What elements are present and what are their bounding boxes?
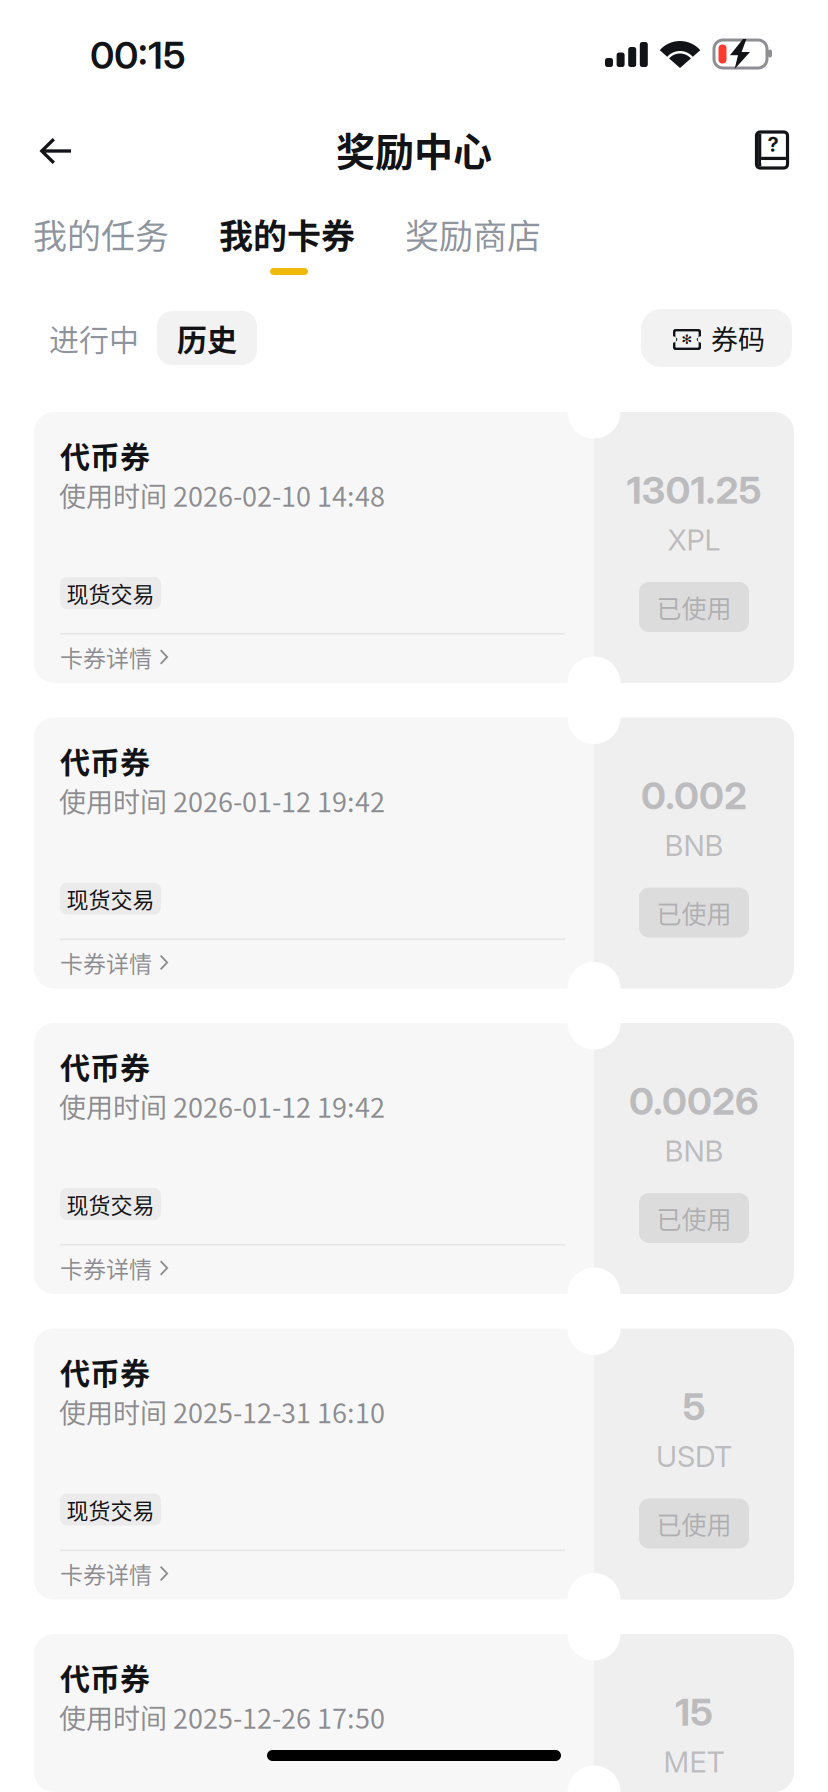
- button[interactable]: 进行中: [48, 311, 140, 365]
- staticText: 奖励商店: [405, 209, 541, 259]
- staticText: 5: [682, 1383, 705, 1429]
- staticText: 0.002: [641, 772, 747, 818]
- button[interactable]: 我的卡券: [219, 206, 359, 262]
- staticText: 已使用: [656, 589, 731, 625]
- staticText: 卡券详情: [60, 640, 152, 674]
- staticText: 已使用: [656, 894, 731, 931]
- staticText: 卡券详情: [60, 946, 152, 979]
- staticText: 现货交易: [66, 1188, 154, 1220]
- staticText: 15: [675, 1689, 713, 1735]
- staticText: 我的卡券: [219, 209, 355, 259]
- staticText: ?: [767, 132, 778, 157]
- staticText: BNB: [664, 828, 723, 863]
- staticText: 00:15: [90, 32, 186, 78]
- button[interactable]: 返回: [25, 121, 85, 181]
- staticText: 现货交易: [66, 883, 154, 914]
- staticText: 使用时间 2025-12-26 17:50: [59, 1697, 385, 1737]
- staticText: MET: [663, 1744, 724, 1780]
- staticText: 现货交易: [66, 1494, 154, 1525]
- staticText: 使用时间 2026-01-12 19:42: [59, 781, 385, 820]
- staticText: 现货交易: [66, 577, 154, 609]
- button[interactable]: 我的任务: [33, 206, 173, 262]
- staticText: 奖励中心: [336, 121, 492, 177]
- staticText: XPL: [667, 522, 720, 558]
- button[interactable]: 代币券: [34, 1328, 794, 1599]
- staticText: 0.0026: [629, 1078, 759, 1124]
- staticText: 1301.25: [626, 467, 761, 513]
- staticText: 券码: [711, 318, 765, 358]
- staticText: 使用时间 2025-12-31 16:10: [59, 1392, 385, 1431]
- button[interactable]: 奖励商店: [405, 206, 545, 262]
- button[interactable]: 代币券: [34, 717, 794, 988]
- staticText: 代币券: [60, 1350, 150, 1393]
- button[interactable]: 历史: [157, 311, 257, 365]
- staticText: 代币券: [60, 1655, 150, 1699]
- staticText: 使用时间 2026-02-10 14:48: [59, 475, 385, 515]
- staticText: 代币券: [60, 433, 150, 477]
- staticText: 卡券详情: [60, 1251, 152, 1285]
- button[interactable]: ✻: [641, 309, 792, 367]
- staticText: 进行中: [49, 316, 139, 360]
- button[interactable]: 代币券: [34, 1634, 794, 1792]
- staticText: 使用时间 2026-01-12 19:42: [59, 1086, 385, 1126]
- staticText: 已使用: [656, 1200, 731, 1236]
- button[interactable]: 代币券: [34, 1023, 794, 1294]
- staticText: 已使用: [656, 1505, 731, 1542]
- staticText: ✻: [681, 332, 692, 347]
- staticText: 代币券: [60, 1044, 150, 1088]
- button[interactable]: 代币券: [34, 412, 794, 683]
- staticText: USDT: [656, 1439, 732, 1474]
- staticText: 我的任务: [33, 209, 169, 259]
- staticText: 卡券详情: [60, 1557, 152, 1590]
- staticText: 代币券: [60, 739, 150, 782]
- staticText: BNB: [664, 1133, 723, 1169]
- button[interactable]: 帮助: [744, 122, 800, 178]
- staticText: 历史: [177, 316, 237, 360]
